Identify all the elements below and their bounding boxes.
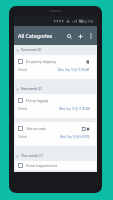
staticText: Default [18, 68, 28, 72]
button[interactable]: Pick up luggage [15, 94, 96, 118]
button[interactable]: Take out trash [15, 122, 96, 146]
staticText: Mon, Sep 13 @ 11:00 AM [58, 68, 90, 72]
staticText: Doctor's appointment [26, 164, 90, 168]
staticText: Tomorrow (2) [21, 48, 42, 52]
button[interactable]: Do grocery shopping [15, 55, 96, 79]
staticText: Take out trash [26, 127, 82, 131]
button[interactable]: Doctor's appointment [15, 161, 96, 170]
button[interactable]: Search [64, 27, 75, 45]
staticText: 5:44 PM [80, 19, 94, 24]
button[interactable]: This month (1) [14, 148, 97, 159]
staticText: Next week (2) [21, 87, 42, 91]
staticText: All Categories [18, 32, 53, 39]
staticText: Default [18, 135, 28, 139]
staticText: Do grocery shopping [26, 60, 86, 64]
staticText: This month (1) [21, 154, 43, 158]
button[interactable]: Tomorrow (2) [14, 45, 97, 53]
staticText: Wed, Sep 15 @ 11:30 AM [59, 107, 90, 111]
button[interactable]: More options [86, 27, 96, 45]
button[interactable]: Next week (2) [14, 81, 97, 92]
staticText: Default [18, 107, 28, 111]
staticText: Pick up luggage [26, 99, 90, 103]
button[interactable]: Add task [75, 27, 86, 45]
staticText: Wed, Sep 15 @ 6:00 PM [60, 135, 90, 139]
